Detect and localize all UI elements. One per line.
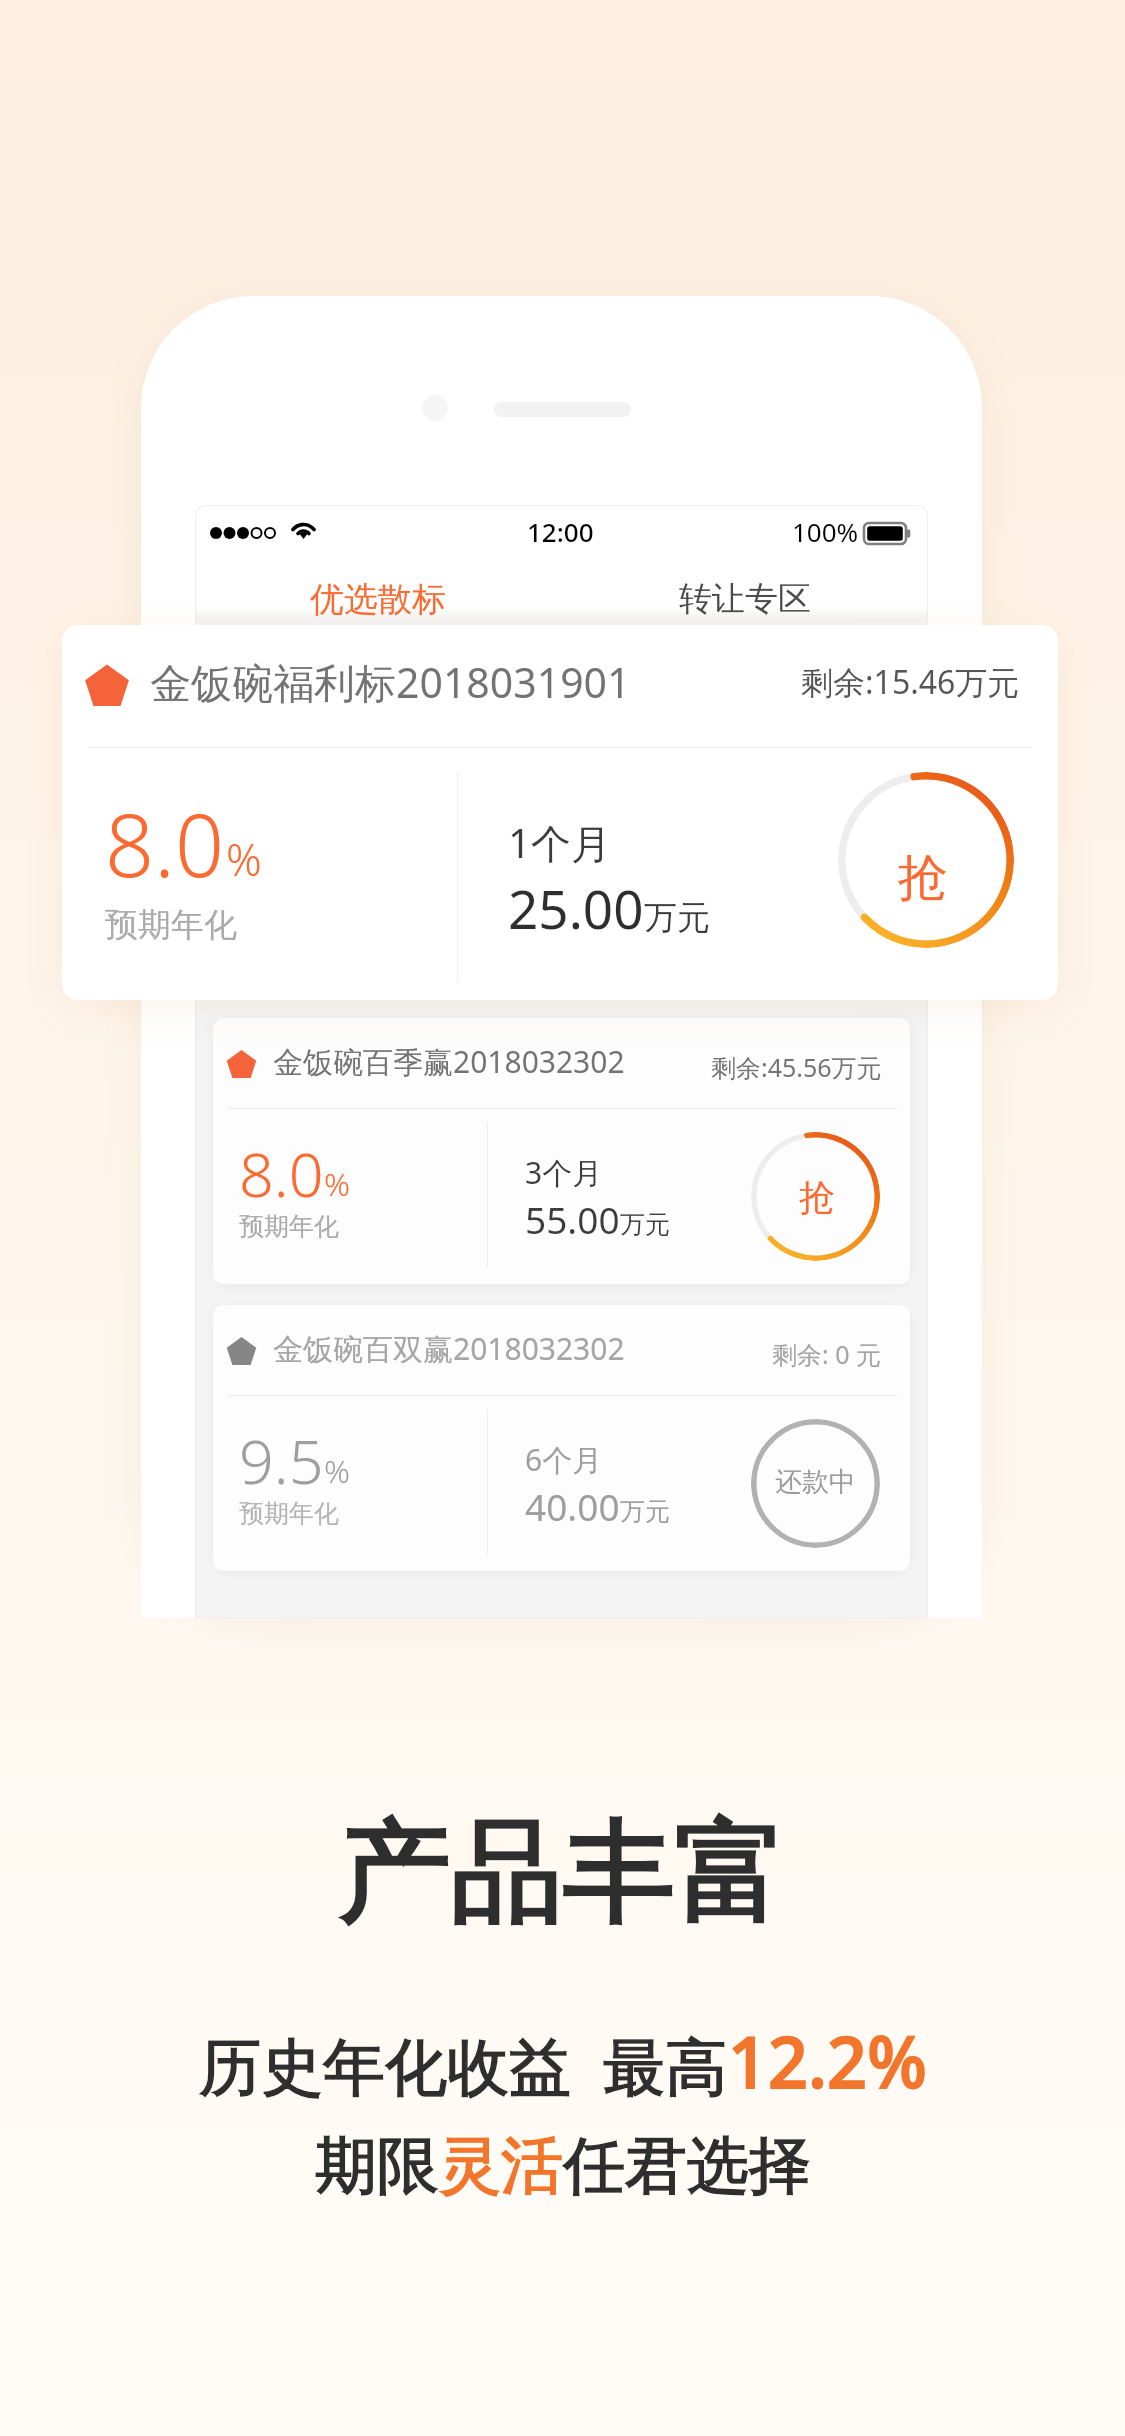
staticText: 灵活: [439, 2127, 563, 2205]
button[interactable]: 还款中: [751, 1419, 880, 1548]
staticText: 任君选择: [563, 2127, 811, 2205]
staticText: %: [324, 1162, 350, 1206]
button[interactable]: 优选散标: [195, 556, 561, 622]
staticText: 灵活: [439, 2127, 563, 2205]
staticText: 3个月: [525, 1152, 603, 1193]
button[interactable]: 金饭碗百季赢2018032302: [213, 1018, 910, 1284]
button[interactable]: 金饭碗百双赢2018032302: [213, 1305, 910, 1571]
staticText: 金饭碗百双赢2018032302: [273, 1328, 625, 1369]
staticText: 万元: [644, 897, 710, 939]
staticText: 12:00: [527, 514, 594, 549]
staticText: 产品丰富: [339, 1802, 787, 1943]
staticText: 期限: [315, 2127, 439, 2205]
staticText: 12.2%: [728, 2013, 927, 2108]
staticText: 1个月: [508, 815, 611, 870]
staticText: 12.2%: [728, 2013, 927, 2108]
staticText: 25.00: [508, 872, 644, 944]
staticText: 55.00: [525, 1194, 620, 1244]
staticText: 任君选择: [563, 2127, 811, 2205]
staticText: 金饭碗福利标2018031901: [150, 654, 631, 710]
staticText: 剩余:15.46万元: [801, 660, 1020, 704]
button[interactable]: 抢: [751, 1132, 880, 1261]
staticText: 抢: [799, 1175, 835, 1220]
staticText: 40.00: [525, 1481, 620, 1531]
staticText: 转让专区: [679, 578, 811, 620]
button[interactable]: 金饭碗福利标2018031901: [62, 625, 1058, 1000]
staticText: 历史年化收益 最高: [199, 2023, 728, 2108]
staticText: 优选散标: [310, 578, 446, 621]
staticText: 8.0: [105, 785, 225, 902]
button[interactable]: 抢: [838, 772, 1014, 948]
button[interactable]: 转让专区: [561, 556, 928, 622]
staticText: 产品丰富: [339, 1802, 787, 1943]
staticText: 剩余: 0 元: [772, 1337, 882, 1371]
staticText: 预期年化: [239, 1498, 339, 1529]
staticText: 期限: [315, 2127, 439, 2205]
staticText: %: [324, 1449, 350, 1493]
staticText: 100%: [792, 514, 859, 549]
staticText: 历史年化收益 最高: [199, 2023, 728, 2108]
staticText: 9.5: [239, 1419, 324, 1502]
staticText: 还款中: [775, 1465, 856, 1499]
staticText: 金饭碗百季赢2018032302: [273, 1041, 625, 1082]
staticText: 万元: [620, 1496, 670, 1527]
staticText: 6个月: [525, 1439, 603, 1480]
staticText: 万元: [620, 1209, 670, 1240]
staticText: %: [226, 829, 262, 889]
staticText: 预期年化: [105, 904, 237, 946]
staticText: 预期年化: [239, 1211, 339, 1242]
staticText: 剩余:45.56万元: [711, 1050, 882, 1084]
staticText: 抢: [898, 847, 948, 910]
staticText: 8.0: [239, 1132, 324, 1215]
